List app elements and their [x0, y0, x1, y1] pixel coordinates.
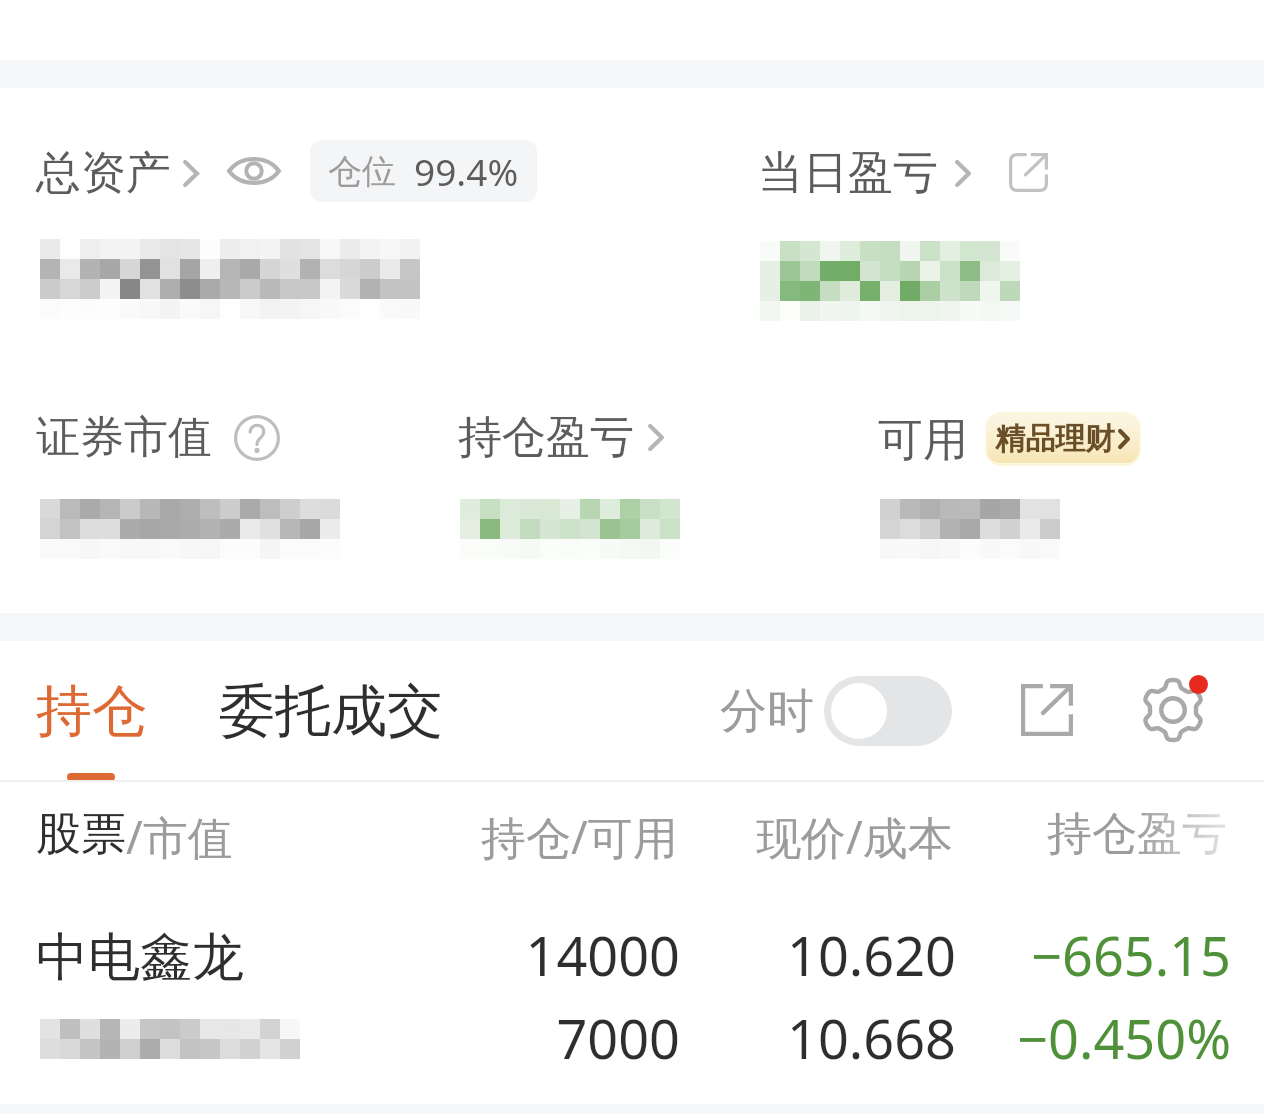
staticText: 持仓盈亏	[458, 410, 634, 465]
button[interactable]: 精品理财	[987, 415, 1139, 463]
button[interactable]: 仓位	[310, 140, 537, 202]
staticText: 99.4%	[414, 146, 519, 196]
staticText: 总资产	[36, 145, 171, 202]
button[interactable]: 当日盈亏	[750, 141, 979, 206]
staticText: 证券市值	[36, 410, 212, 465]
button[interactable]: 分时	[712, 668, 960, 754]
staticText: −0.450%	[891, 1001, 1231, 1075]
staticText: /市值	[126, 806, 233, 867]
button[interactable]: Share	[1012, 675, 1082, 745]
staticText: 委托成交	[219, 676, 443, 747]
staticText: −665.15	[891, 918, 1231, 992]
staticText: 持仓/可用	[481, 806, 678, 867]
staticText: 仓位	[328, 150, 396, 193]
staticText: 10.668	[616, 1001, 956, 1075]
button[interactable]: 总资产	[28, 141, 207, 206]
staticText: 14000	[340, 918, 680, 992]
staticText: 持仓	[36, 676, 148, 747]
button[interactable]: 中电鑫龙	[0, 900, 1264, 1114]
button[interactable]: 证券市值	[28, 406, 288, 469]
staticText: 10.620	[616, 918, 956, 992]
button[interactable]: 持仓	[24, 666, 160, 757]
button[interactable]: 可用	[870, 406, 976, 475]
staticText: 7000	[340, 1001, 680, 1075]
button[interactable]: Settings	[1133, 670, 1213, 750]
staticText: 持仓盈亏	[1047, 806, 1227, 863]
staticText: 可用	[878, 412, 968, 469]
staticText: 股票	[36, 806, 126, 863]
button[interactable]: Toggle amount visibility	[222, 139, 286, 203]
staticText: 精品理财	[995, 420, 1115, 458]
button[interactable]: 委托成交	[207, 666, 455, 757]
staticText: 分时	[720, 682, 814, 741]
staticText: 中电鑫龙	[36, 925, 244, 991]
staticText: 现价/成本	[756, 806, 953, 867]
button[interactable]: Open daily P/L detail	[995, 139, 1061, 205]
button[interactable]: 持仓盈亏	[450, 406, 672, 469]
staticText: 当日盈亏	[758, 145, 938, 202]
